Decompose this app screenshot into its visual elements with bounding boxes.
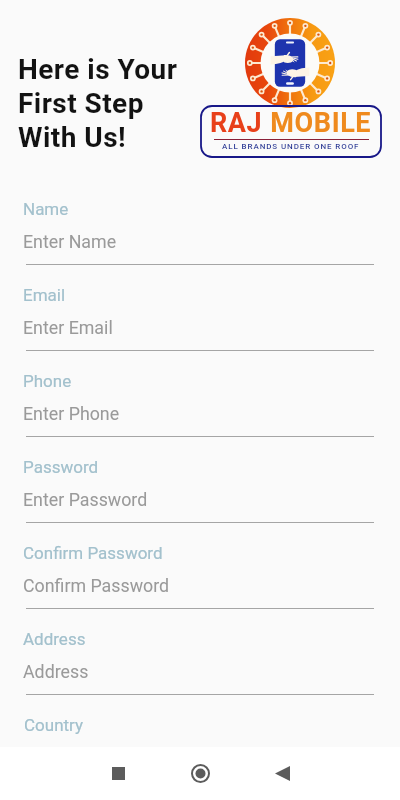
staticText: Password <box>23 457 99 477</box>
staticText: Address <box>23 629 86 649</box>
staticText: ALL BRANDS UNDER ONE ROOF <box>222 142 360 151</box>
staticText: Enter Phone <box>23 403 120 424</box>
button[interactable]: Confirm Password <box>0 543 400 621</box>
staticText: Confirm Password <box>23 575 170 596</box>
staticText: Email <box>23 285 66 305</box>
button[interactable]: Name <box>0 199 400 277</box>
button[interactable]: Email <box>0 285 400 363</box>
staticText: Phone <box>23 371 72 391</box>
button[interactable]: Phone <box>0 371 400 449</box>
staticText: Here is Your First Step With Us! <box>18 53 178 154</box>
staticText: RAJ <box>210 107 263 139</box>
staticText: Enter Email <box>23 317 113 338</box>
button[interactable]: Home <box>159 747 241 800</box>
staticText: Name <box>23 199 69 219</box>
staticText: Enter Name <box>23 231 117 252</box>
button[interactable]: Recent apps <box>77 747 159 800</box>
button[interactable]: Back <box>241 747 323 800</box>
staticText: MOBILE <box>263 107 372 139</box>
button[interactable]: Country <box>0 715 400 745</box>
button[interactable]: Password <box>0 457 400 535</box>
staticText: Address <box>23 661 89 682</box>
staticText: Confirm Password <box>23 543 163 563</box>
staticText: Country <box>24 715 84 735</box>
button[interactable]: Address <box>0 629 400 707</box>
staticText: Enter Password <box>23 489 148 510</box>
